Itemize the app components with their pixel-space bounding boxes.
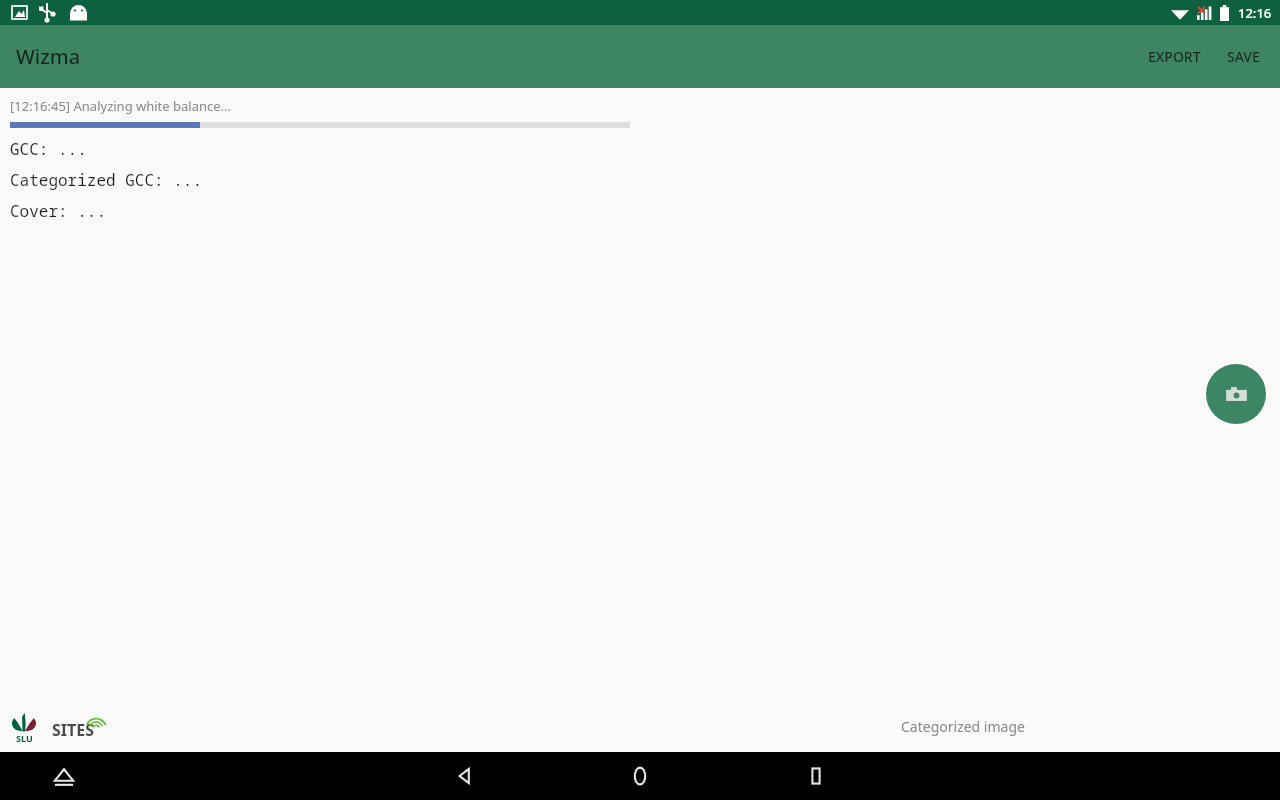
button[interactable]: Back bbox=[440, 752, 488, 800]
staticText: SLU bbox=[16, 732, 33, 744]
staticText: Categorized GCC: ... bbox=[10, 169, 203, 191]
staticText: Categorized image bbox=[901, 717, 1025, 736]
staticText: SAVE bbox=[1227, 47, 1260, 66]
staticText: 12:16 bbox=[1238, 4, 1272, 22]
staticText: SITES bbox=[52, 719, 95, 741]
button[interactable]: Hide keyboard bbox=[40, 752, 88, 800]
staticText: GCC: ... bbox=[10, 138, 87, 160]
button[interactable]: Take photo bbox=[1206, 364, 1266, 424]
button[interactable]: SAVE bbox=[1214, 32, 1280, 81]
staticText: EXPORT bbox=[1148, 47, 1201, 66]
staticText: [12:16:45] Analyzing white balance... bbox=[10, 97, 232, 115]
staticText: Cover: ... bbox=[10, 200, 107, 222]
button[interactable]: Home bbox=[616, 752, 664, 800]
button[interactable]: Recent apps bbox=[792, 752, 840, 800]
staticText: Wizma bbox=[16, 43, 81, 70]
button[interactable]: EXPORT bbox=[1135, 32, 1214, 81]
